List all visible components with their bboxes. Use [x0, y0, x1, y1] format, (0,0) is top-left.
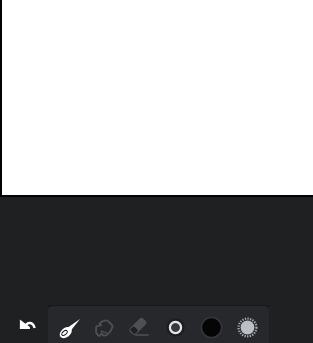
button[interactable]: Eraser	[121, 306, 155, 343]
button[interactable]: Opacity	[230, 306, 264, 343]
button[interactable]: Brush	[53, 306, 87, 343]
button[interactable]: Brush size	[158, 306, 192, 343]
button[interactable]: Smudge	[87, 306, 121, 343]
button[interactable]: Undo	[9, 310, 45, 338]
button[interactable]: Color	[194, 306, 228, 343]
